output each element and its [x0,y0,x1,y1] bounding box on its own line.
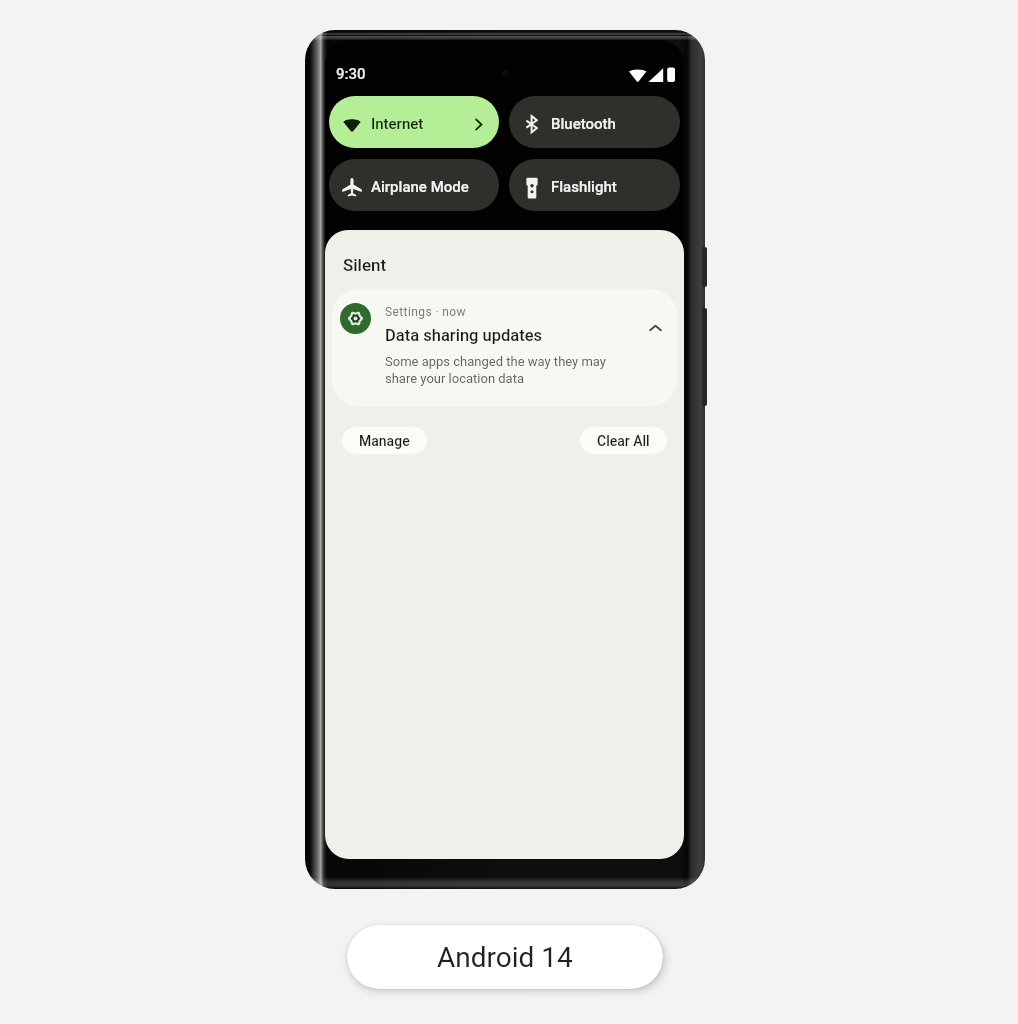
button[interactable]: Internet [329,96,499,148]
other: Power button [702,247,707,287]
staticText: Airplane Mode [371,178,469,196]
button[interactable]: Clear All [580,427,667,454]
button[interactable]: Bluetooth [509,96,680,148]
button[interactable]: Airplane Mode [329,159,499,211]
staticText: Data sharing updates [385,326,543,345]
staticText: Settings · now [385,305,466,319]
staticText: Silent [343,255,387,275]
other: Volume button [702,308,707,406]
button[interactable]: Collapse notification [643,316,667,340]
button[interactable]: Manage [342,427,427,454]
button[interactable]: Android 14 [347,925,663,989]
staticText: Flashlight [551,178,617,196]
staticText: Manage [359,433,410,449]
button[interactable]: Settings · now [332,289,677,406]
button[interactable]: Flashlight [509,159,680,211]
staticText: 9:30 [336,65,366,83]
staticText: Some apps changed the way they may share… [385,354,606,387]
staticText: Clear All [597,433,650,449]
staticText: Bluetooth [551,115,616,133]
staticText: Android 14 [437,941,573,974]
staticText: Internet [371,115,424,133]
